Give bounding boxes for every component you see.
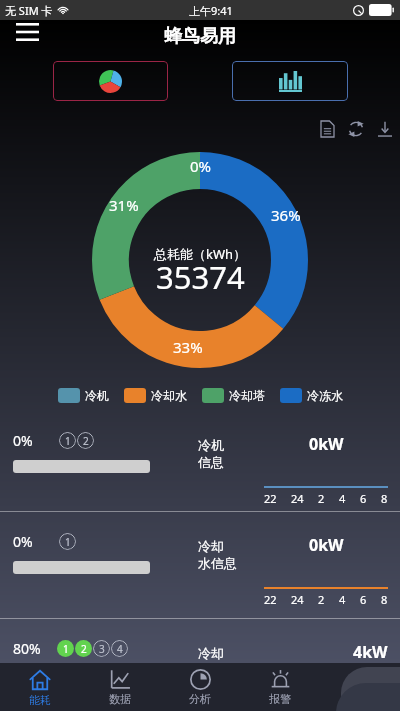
button[interactable]: Download bbox=[372, 120, 398, 138]
button[interactable]: 数据 bbox=[80, 664, 160, 711]
staticText: 80% bbox=[13, 639, 41, 658]
button[interactable]: 0% bbox=[0, 411, 400, 511]
staticText: 冷冻水 bbox=[307, 388, 343, 403]
staticText: 22 bbox=[264, 491, 277, 506]
staticText: 报警 bbox=[269, 692, 291, 706]
staticText: 1 bbox=[65, 535, 71, 549]
button[interactable]: 我的 bbox=[320, 664, 400, 711]
staticText: 24 bbox=[291, 491, 304, 506]
staticText: 6 bbox=[360, 491, 367, 506]
button[interactable]: 0% bbox=[0, 512, 400, 618]
button[interactable]: 80% bbox=[0, 619, 400, 664]
staticText: 4 bbox=[339, 592, 346, 607]
staticText: 6 bbox=[360, 592, 367, 607]
staticText: 0kW bbox=[309, 433, 344, 455]
staticText: 2 bbox=[318, 592, 325, 607]
staticText: 0kW bbox=[309, 534, 344, 556]
staticText: 冷却塔 bbox=[229, 388, 265, 403]
staticText: 0% bbox=[13, 532, 33, 551]
staticText: 31% bbox=[109, 195, 139, 215]
staticText: 35374 bbox=[156, 256, 245, 298]
staticText: 8 bbox=[381, 491, 388, 506]
staticText: 上午9:41 bbox=[189, 3, 233, 18]
staticText: 3 bbox=[99, 642, 105, 656]
staticText: 1 bbox=[63, 642, 69, 656]
button[interactable]: Report bbox=[314, 120, 340, 138]
staticText: 无 SIM 卡 bbox=[5, 3, 53, 18]
staticText: 2 bbox=[81, 642, 87, 656]
button[interactable]: Pie chart view bbox=[53, 61, 168, 101]
staticText: 1 bbox=[65, 434, 71, 448]
staticText: 4 bbox=[117, 642, 123, 656]
staticText: 数据 bbox=[109, 692, 131, 706]
button[interactable]: Bar chart view bbox=[232, 61, 348, 101]
staticText: 冷机 信息 bbox=[198, 437, 224, 471]
staticText: 4kW bbox=[353, 641, 388, 663]
staticText: 总耗能（kWh） bbox=[154, 245, 247, 263]
staticText: 冷却 水信息 bbox=[198, 538, 237, 572]
staticText: 2 bbox=[318, 491, 325, 506]
staticText: 22 bbox=[264, 592, 277, 607]
button[interactable]: Refresh bbox=[343, 120, 369, 138]
staticText: 0% bbox=[13, 431, 33, 450]
button[interactable]: Menu bbox=[10, 15, 44, 49]
staticText: 24 bbox=[291, 592, 304, 607]
staticText: 36% bbox=[271, 205, 301, 225]
button[interactable]: Assistant bbox=[330, 663, 400, 711]
staticText: 4 bbox=[339, 491, 346, 506]
staticText: 能耗 bbox=[29, 693, 51, 707]
staticText: 蜂鸟易用 bbox=[164, 25, 236, 48]
button[interactable]: 分析 bbox=[160, 664, 240, 711]
staticText: 2 bbox=[83, 434, 89, 448]
button[interactable]: 能耗 bbox=[0, 664, 80, 711]
staticText: 冷机 bbox=[85, 388, 109, 403]
staticText: 0% bbox=[190, 156, 212, 176]
staticText: 冷却水 bbox=[151, 388, 187, 403]
button[interactable]: 报警 bbox=[240, 664, 320, 711]
staticText: 8 bbox=[381, 592, 388, 607]
staticText: 33% bbox=[173, 337, 203, 357]
staticText: 分析 bbox=[189, 692, 211, 706]
staticText: 冷却 bbox=[198, 645, 224, 661]
